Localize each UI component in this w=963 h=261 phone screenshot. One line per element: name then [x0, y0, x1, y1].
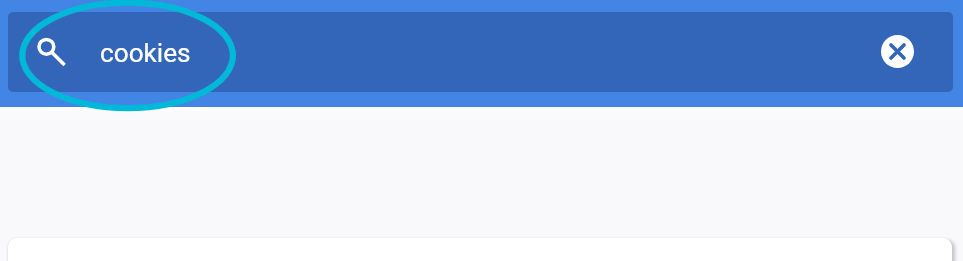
- button[interactable]: Clear search: [881, 35, 914, 68]
- staticText: cookies: [100, 38, 191, 69]
- button[interactable]: Search: [28, 28, 76, 76]
- button[interactable]: Search field: cookies: [8, 12, 953, 92]
